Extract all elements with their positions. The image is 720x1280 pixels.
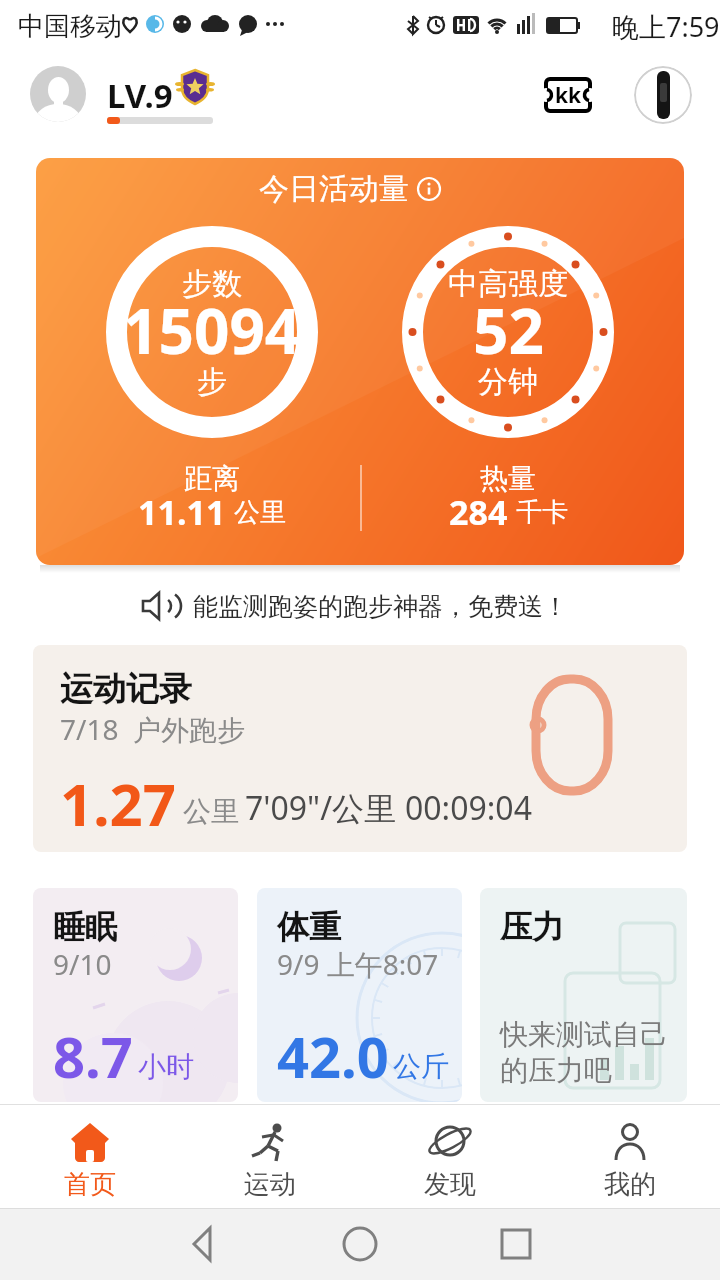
button[interactable] [634, 66, 692, 124]
button[interactable]: kk [544, 76, 592, 114]
staticText: kk [555, 81, 582, 110]
staticText: 7/18 户外跑步 [60, 710, 246, 748]
staticText: 千卡 [516, 496, 568, 529]
staticText: 中高强度 [448, 265, 568, 303]
staticText: 公里 [234, 496, 286, 529]
button[interactable]: 发现 [370, 1106, 530, 1206]
staticText: 晚上7:59 [612, 8, 720, 45]
staticText: 体重 [277, 907, 341, 947]
staticText: 能监测跑姿的跑步神器，免费送！ [193, 591, 568, 622]
staticText: 运动记录 [60, 668, 192, 710]
button[interactable]: 体重 [257, 888, 462, 1102]
staticText: 1.27 [60, 764, 176, 843]
staticText: 运动 [244, 1168, 296, 1201]
staticText: 11.11 [138, 489, 226, 535]
staticText: 今日活动量 [259, 170, 409, 208]
staticText: 中国移动 [18, 10, 122, 43]
button[interactable]: 运动 [190, 1106, 350, 1206]
staticText: 公斤 [393, 1049, 449, 1084]
staticText: LV.9 [107, 73, 173, 118]
staticText: 距离 [184, 461, 240, 496]
staticText: 284 [449, 489, 508, 535]
staticText: 步数 [182, 265, 242, 303]
staticText: 分钟 [478, 363, 538, 401]
staticText: 首页 [64, 1168, 116, 1201]
staticText: 8.7 [53, 1018, 133, 1094]
button[interactable] [172, 1214, 232, 1274]
button[interactable]: 运动记录 [33, 645, 687, 852]
staticText: 42.0 [277, 1018, 389, 1094]
button[interactable]: 能监测跑姿的跑步神器，免费送！ [0, 578, 720, 634]
staticText: 公里 [183, 794, 239, 829]
staticText: 00:09:04 [405, 786, 532, 830]
button[interactable]: 压力 [480, 888, 687, 1102]
staticText: 我的 [604, 1168, 656, 1201]
staticText: 9/9 上午8:07 [277, 945, 439, 983]
button[interactable]: 我的 [550, 1106, 710, 1206]
staticText: 7'09"/公里 [245, 786, 397, 830]
staticText: 的压力吧 [500, 1053, 612, 1088]
button[interactable] [486, 1214, 546, 1274]
staticText: 发现 [424, 1168, 476, 1201]
button[interactable]: 睡眠 [33, 888, 238, 1102]
staticText: 9/10 [53, 945, 112, 983]
staticText: 快来测试自己 [500, 1017, 668, 1052]
staticText: 热量 [480, 461, 536, 496]
staticText: 小时 [138, 1049, 194, 1084]
button[interactable]: 今日活动量 [36, 158, 684, 565]
staticText: 52 [473, 288, 544, 372]
staticText: 睡眠 [53, 907, 117, 947]
staticText: 压力 [500, 907, 564, 947]
button[interactable] [330, 1214, 390, 1274]
staticText: 15094 [123, 288, 301, 372]
button[interactable]: 首页 [10, 1106, 170, 1206]
button[interactable] [30, 66, 86, 122]
staticText: 步 [197, 363, 227, 401]
